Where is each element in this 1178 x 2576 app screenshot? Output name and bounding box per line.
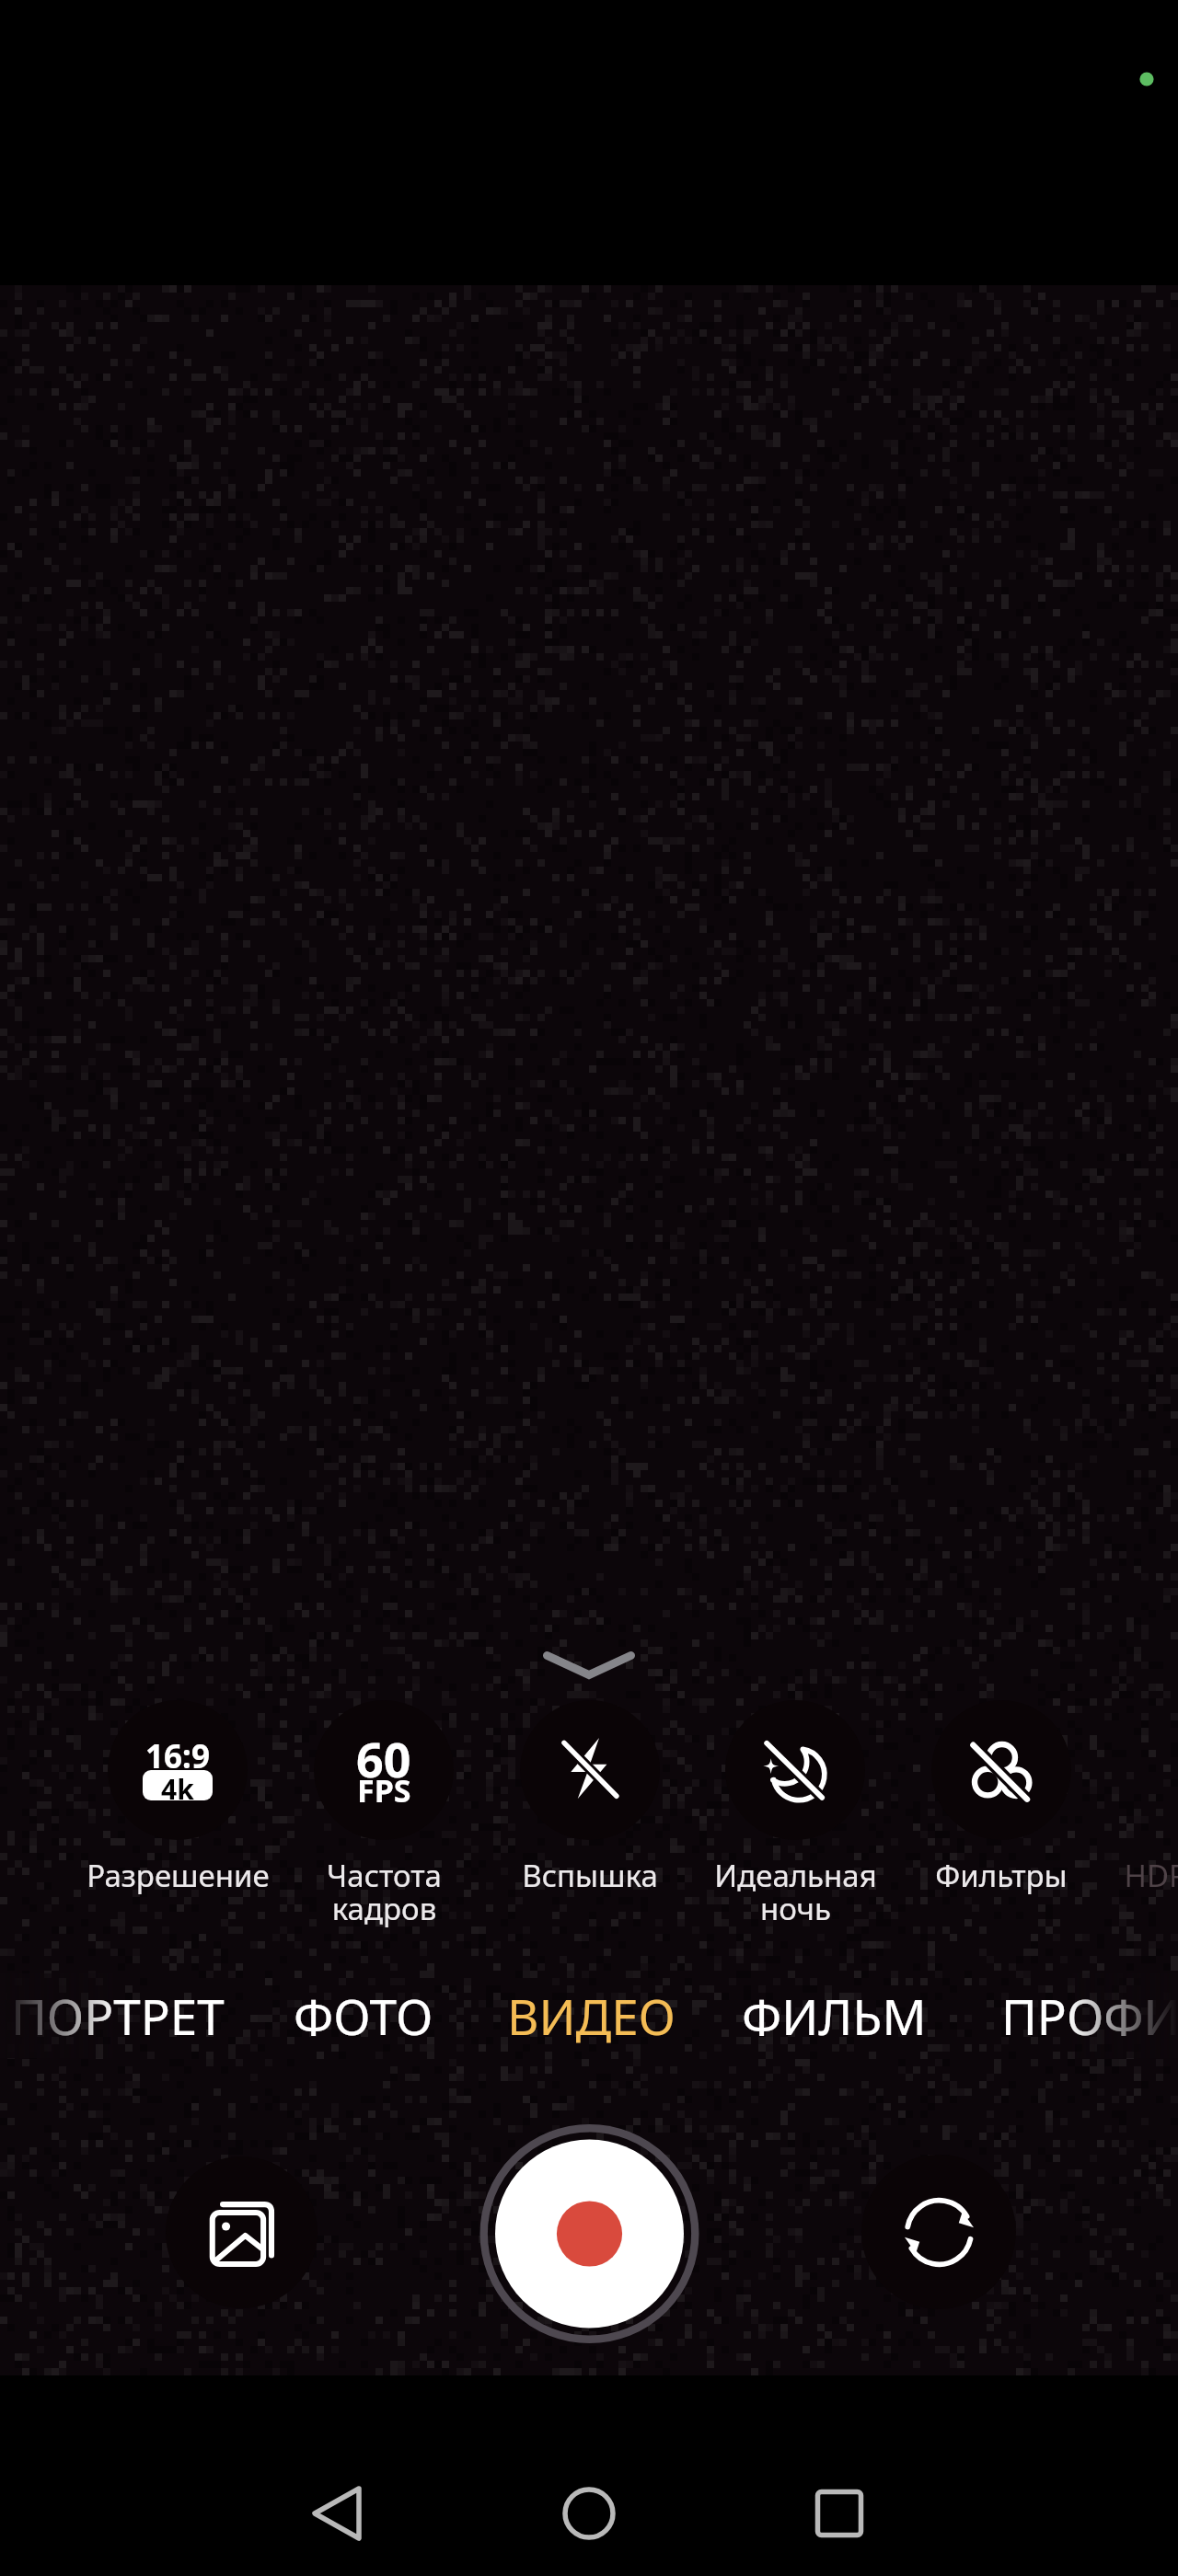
button[interactable]: HDR <box>1064 1700 1178 1899</box>
staticText: Вспышка <box>522 1855 658 1896</box>
button[interactable]: ПОРТРЕТ <box>0 1973 274 2058</box>
staticText: ФОТО <box>294 1983 433 2049</box>
button[interactable]: Фильтры <box>891 1700 1112 1899</box>
button[interactable]: ФОТО <box>207 1973 520 2058</box>
staticText: Фильтры <box>935 1855 1068 1896</box>
button[interactable]: ФИЛЬМ <box>677 1973 990 2058</box>
staticText: Идеальная ночь <box>714 1855 877 1929</box>
button[interactable]: ПРОФИ <box>934 1973 1178 2058</box>
staticText: Частота кадров <box>327 1855 442 1929</box>
button[interactable]: Switch camera <box>861 2155 1016 2309</box>
button[interactable]: Record video <box>460 2105 718 2363</box>
staticText: 60 <box>356 1726 411 1791</box>
staticText: FPS <box>357 1769 411 1811</box>
staticText: HDR <box>1124 1855 1178 1896</box>
button[interactable]: Идеальная ночь <box>685 1700 906 1899</box>
staticText: ПРОФИ <box>1001 1983 1178 2049</box>
button[interactable]: Back <box>263 2440 410 2576</box>
staticText: 4k <box>161 1770 194 1800</box>
button[interactable]: Recent apps <box>766 2440 913 2576</box>
button[interactable]: Home <box>515 2440 663 2576</box>
button[interactable]: 60 <box>273 1700 494 1899</box>
button[interactable]: Hide settings <box>525 1619 653 1711</box>
staticText: ФИЛЬМ <box>742 1983 927 2049</box>
staticText: ПОРТРЕТ <box>11 1983 225 2049</box>
staticText: 16:9 <box>145 1734 210 1778</box>
button[interactable]: Gallery <box>166 2156 318 2308</box>
staticText: ВИДЕО <box>507 1983 676 2049</box>
button[interactable]: 16:9 <box>67 1700 288 1899</box>
staticText: Разрешение <box>87 1855 270 1896</box>
button[interactable]: ВИДЕО <box>434 1973 747 2058</box>
button[interactable]: Вспышка <box>479 1700 700 1899</box>
